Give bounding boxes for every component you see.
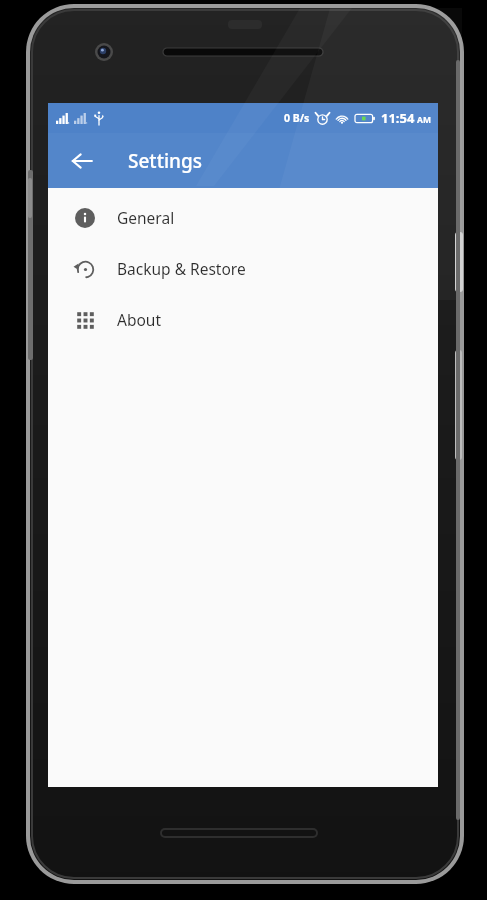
staticText: About — [117, 309, 161, 330]
staticText: AM — [417, 114, 431, 126]
staticText: General — [117, 207, 175, 228]
button[interactable]: General — [48, 192, 438, 243]
button[interactable]: Backup & Restore — [48, 243, 438, 294]
button[interactable]: About — [48, 294, 438, 345]
staticText: 0 B/s — [284, 111, 310, 125]
staticText: Backup & Restore — [117, 258, 246, 279]
button[interactable]: Back — [62, 141, 102, 181]
staticText: Settings — [128, 148, 202, 174]
staticText: 11:54 — [381, 109, 415, 127]
